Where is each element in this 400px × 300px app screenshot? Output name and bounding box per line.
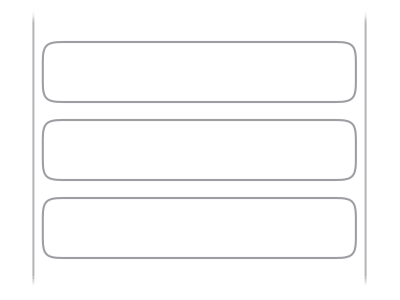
- button[interactable]: Second item: [43, 120, 356, 180]
- button[interactable]: Third item: [43, 198, 356, 258]
- button[interactable]: First item: [43, 42, 356, 102]
